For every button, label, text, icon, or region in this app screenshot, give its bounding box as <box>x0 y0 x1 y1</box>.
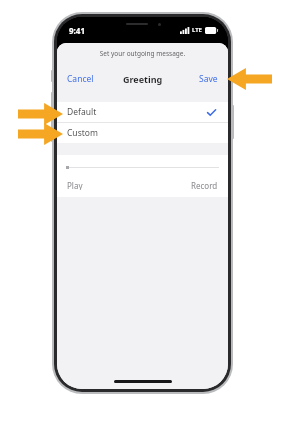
staticText: Cancel <box>67 73 94 85</box>
staticText: Record <box>191 180 218 190</box>
staticText: Save <box>199 73 218 85</box>
staticText: 9:41 <box>69 25 85 36</box>
staticText: Default <box>67 106 97 118</box>
staticText: Play <box>67 180 83 190</box>
staticText: Set your outgoing message. <box>57 49 228 58</box>
button[interactable]: Cancel <box>57 69 104 89</box>
button[interactable]: Custom <box>57 123 228 143</box>
staticText: Greeting <box>123 73 163 85</box>
staticText: LTE <box>192 26 202 34</box>
button[interactable]: Save <box>189 69 228 89</box>
button[interactable]: Default <box>57 102 228 122</box>
button[interactable]: Play <box>57 177 93 193</box>
staticText: Custom <box>67 127 98 139</box>
button[interactable]: Record <box>181 177 228 193</box>
